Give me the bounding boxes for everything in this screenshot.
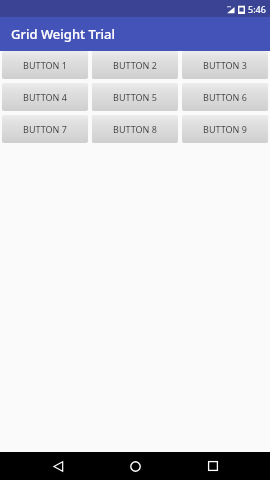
staticText: BUTTON 2 xyxy=(113,59,157,71)
staticText: Grid Weight Trial xyxy=(11,25,116,43)
button[interactable]: BUTTON 2 xyxy=(92,51,178,79)
button[interactable]: Home xyxy=(115,452,155,480)
button[interactable]: Recent apps xyxy=(193,452,233,480)
button[interactable]: BUTTON 4 xyxy=(2,83,88,111)
button[interactable]: BUTTON 8 xyxy=(92,115,178,143)
button[interactable]: BUTTON 3 xyxy=(182,51,268,79)
button[interactable]: BUTTON 7 xyxy=(2,115,88,143)
staticText: BUTTON 9 xyxy=(203,123,247,135)
staticText: BUTTON 7 xyxy=(23,123,67,135)
staticText: BUTTON 6 xyxy=(203,91,247,103)
button[interactable]: Back xyxy=(38,452,78,480)
button[interactable]: BUTTON 6 xyxy=(182,83,268,111)
staticText: BUTTON 4 xyxy=(23,91,67,103)
staticText: BUTTON 5 xyxy=(113,91,157,103)
staticText: BUTTON 8 xyxy=(113,123,157,135)
staticText: BUTTON 1 xyxy=(23,59,67,71)
button[interactable]: BUTTON 5 xyxy=(92,83,178,111)
staticText: 5:46 xyxy=(248,3,266,15)
staticText: BUTTON 3 xyxy=(203,59,247,71)
button[interactable]: BUTTON 9 xyxy=(182,115,268,143)
button[interactable]: BUTTON 1 xyxy=(2,51,88,79)
